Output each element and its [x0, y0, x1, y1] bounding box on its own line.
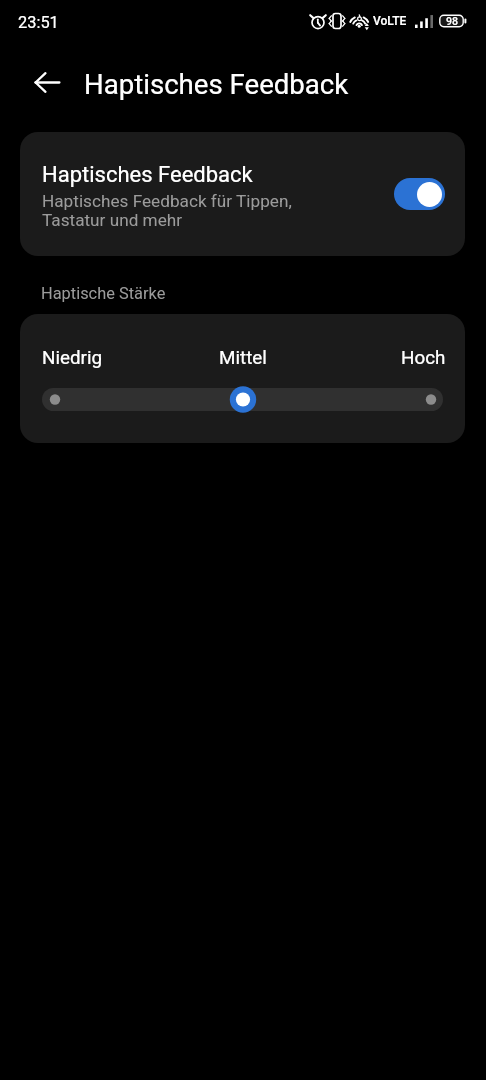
staticText: VoLTE: [373, 14, 407, 28]
staticText: Haptisches Feedback: [84, 68, 349, 100]
button[interactable]: Haptisches Feedback einschalten: [394, 178, 445, 210]
staticText: Mittel: [219, 347, 267, 369]
button[interactable]: Haptisches Feedback: [20, 132, 465, 256]
staticText: 98: [446, 15, 459, 27]
staticText: Haptisches Feedback: [42, 162, 253, 188]
staticText: Haptische Stärke: [41, 284, 166, 303]
button[interactable]: Back: [23, 58, 71, 106]
staticText: Hoch: [401, 347, 446, 369]
staticText: 23:51: [18, 13, 59, 32]
staticText: Haptisches Feedback für Tippen, Tastatur…: [42, 191, 292, 230]
staticText: Niedrig: [42, 347, 103, 369]
button[interactable]: Haptische Stärke: [42, 384, 443, 415]
